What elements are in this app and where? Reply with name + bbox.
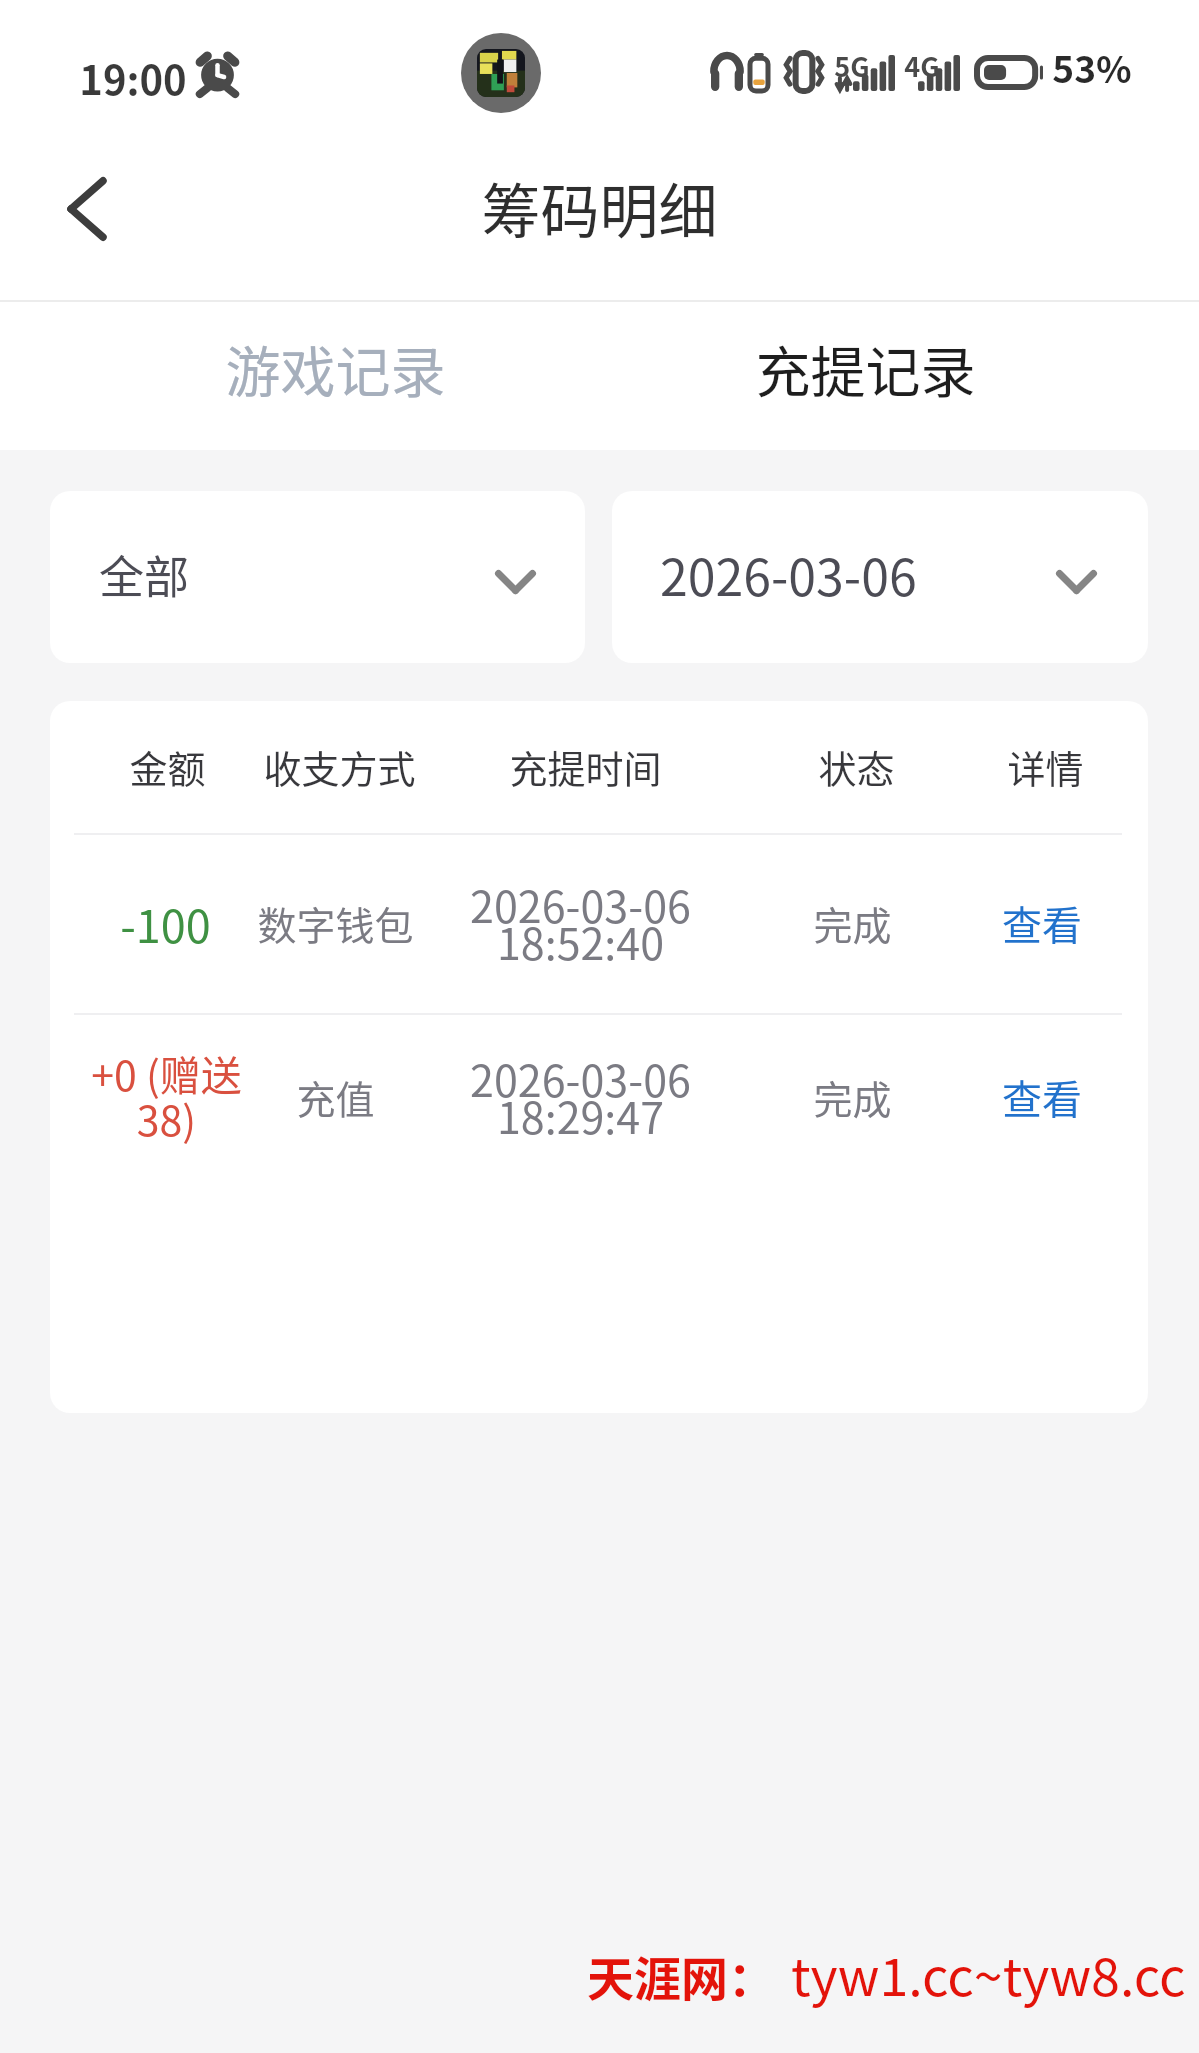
staticText: 筹码明细 (481, 165, 718, 250)
staticText: 全部 (99, 542, 190, 607)
button[interactable]: 查看 (892, 1032, 1148, 1162)
staticText: 查看 (1002, 1068, 1082, 1126)
staticText: -100 (120, 891, 211, 956)
staticText: 5G (834, 46, 870, 85)
staticText: 充值 (296, 1069, 375, 1125)
button[interactable]: 充提记录 (725, 320, 1005, 416)
staticText: 收支方式 (263, 739, 416, 794)
other: Vibrate mode (782, 53, 826, 91)
button[interactable]: App notification (461, 33, 541, 113)
staticText: 完成 (813, 895, 892, 951)
button[interactable]: 全部 (50, 491, 585, 663)
staticText: 充提记录 (755, 328, 976, 408)
staticText: +0 (赠送 38) (91, 1043, 242, 1148)
staticText: 完成 (813, 1069, 892, 1125)
button[interactable]: 游戏记录 (195, 320, 475, 416)
staticText: tyw1.cc~tyw8.cc (791, 1936, 1186, 2011)
staticText: 详情 (1007, 739, 1084, 794)
other: Battery 53 percent (974, 55, 1043, 90)
other: Alarm set (197, 53, 238, 91)
staticText: 游戏记录 (225, 328, 446, 408)
staticText: 天涯网： (587, 1941, 775, 2009)
staticText: 19:00 (79, 49, 187, 107)
staticText: 2026-03-06 18:52:40 (470, 873, 691, 973)
other: Headphones connected (711, 54, 743, 91)
staticText: 查看 (1002, 894, 1082, 952)
staticText: 4G (904, 46, 940, 85)
staticText: 金额 (129, 739, 206, 794)
staticText: 53% (1052, 40, 1132, 94)
button[interactable]: 2026-03-06 (612, 491, 1148, 663)
button[interactable]: Back (34, 156, 140, 262)
staticText: 2026-03-06 18:29:47 (470, 1047, 691, 1147)
button[interactable]: 查看 (892, 858, 1148, 988)
staticText: 充提时间 (509, 739, 662, 794)
other: Headset battery (748, 53, 770, 91)
staticText: 数字钱包 (257, 895, 414, 951)
staticText: 2026-03-06 (660, 538, 917, 610)
staticText: 状态 (818, 739, 895, 794)
